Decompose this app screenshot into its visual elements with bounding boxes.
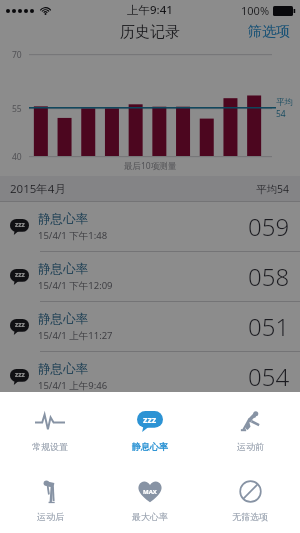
staticText: 平均 <box>276 97 293 108</box>
staticText: 运动后 <box>37 511 64 522</box>
staticText: 054 <box>248 360 290 393</box>
staticText: 静息心率 <box>132 441 168 452</box>
staticText: zzz <box>15 270 25 279</box>
staticText: 059 <box>248 210 290 243</box>
button[interactable]: 筛选项 <box>238 20 300 44</box>
staticText: 运动前 <box>237 441 264 452</box>
staticText: 057 <box>248 410 290 443</box>
button[interactable]: zzz <box>0 352 300 401</box>
button[interactable]: 最大心率 <box>100 470 200 530</box>
staticText: 058 <box>248 260 290 293</box>
staticText: zzz <box>15 320 25 329</box>
staticText: 55 <box>12 103 22 115</box>
staticText: 15/4/1 下午12:09 <box>38 279 113 292</box>
staticText: 静息心率 <box>38 261 88 277</box>
staticText: 100% <box>241 3 270 18</box>
staticText: 最大心率 <box>132 511 168 522</box>
staticText: 2015年4月 <box>10 181 66 197</box>
button[interactable]: 运动前 <box>200 400 300 460</box>
staticText: 051 <box>248 310 290 343</box>
staticText: 历史记录 <box>120 23 180 42</box>
staticText: 15/4/1 上午11:27 <box>38 329 113 342</box>
staticText: 最后10项测量 <box>124 160 177 172</box>
staticText: 筛选项 <box>248 23 290 41</box>
button[interactable]: zzz <box>0 202 300 251</box>
button[interactable]: 静息心率 <box>100 400 200 460</box>
staticText: 15/4/1 上午9:46 <box>38 379 108 392</box>
staticText: 静息心率 <box>38 211 88 227</box>
button[interactable]: zzz <box>0 302 300 351</box>
staticText: 平均54 <box>256 182 290 196</box>
button[interactable]: 无筛选项 <box>200 470 300 530</box>
staticText: 54 <box>276 108 286 120</box>
button[interactable]: zzz <box>0 252 300 301</box>
staticText: zzz <box>143 413 157 425</box>
staticText: MAX <box>143 488 157 496</box>
staticText: 无筛选项 <box>232 511 268 522</box>
button[interactable]: zzz <box>0 402 300 451</box>
staticText: zzz <box>15 220 25 229</box>
staticText: 静息心率 <box>38 311 88 327</box>
staticText: 上午9:41 <box>127 2 173 18</box>
staticText: 静息心率 <box>38 361 88 377</box>
staticText: zzz <box>15 370 25 379</box>
staticText: 静息心率 <box>38 411 88 427</box>
button[interactable]: 常规设置 <box>0 400 100 460</box>
button[interactable]: 运动后 <box>0 470 100 530</box>
staticText: 40 <box>12 151 22 163</box>
staticText: 70 <box>12 49 22 61</box>
staticText: 15/4/1 下午1:48 <box>38 229 108 242</box>
staticText: 常规设置 <box>32 441 68 452</box>
